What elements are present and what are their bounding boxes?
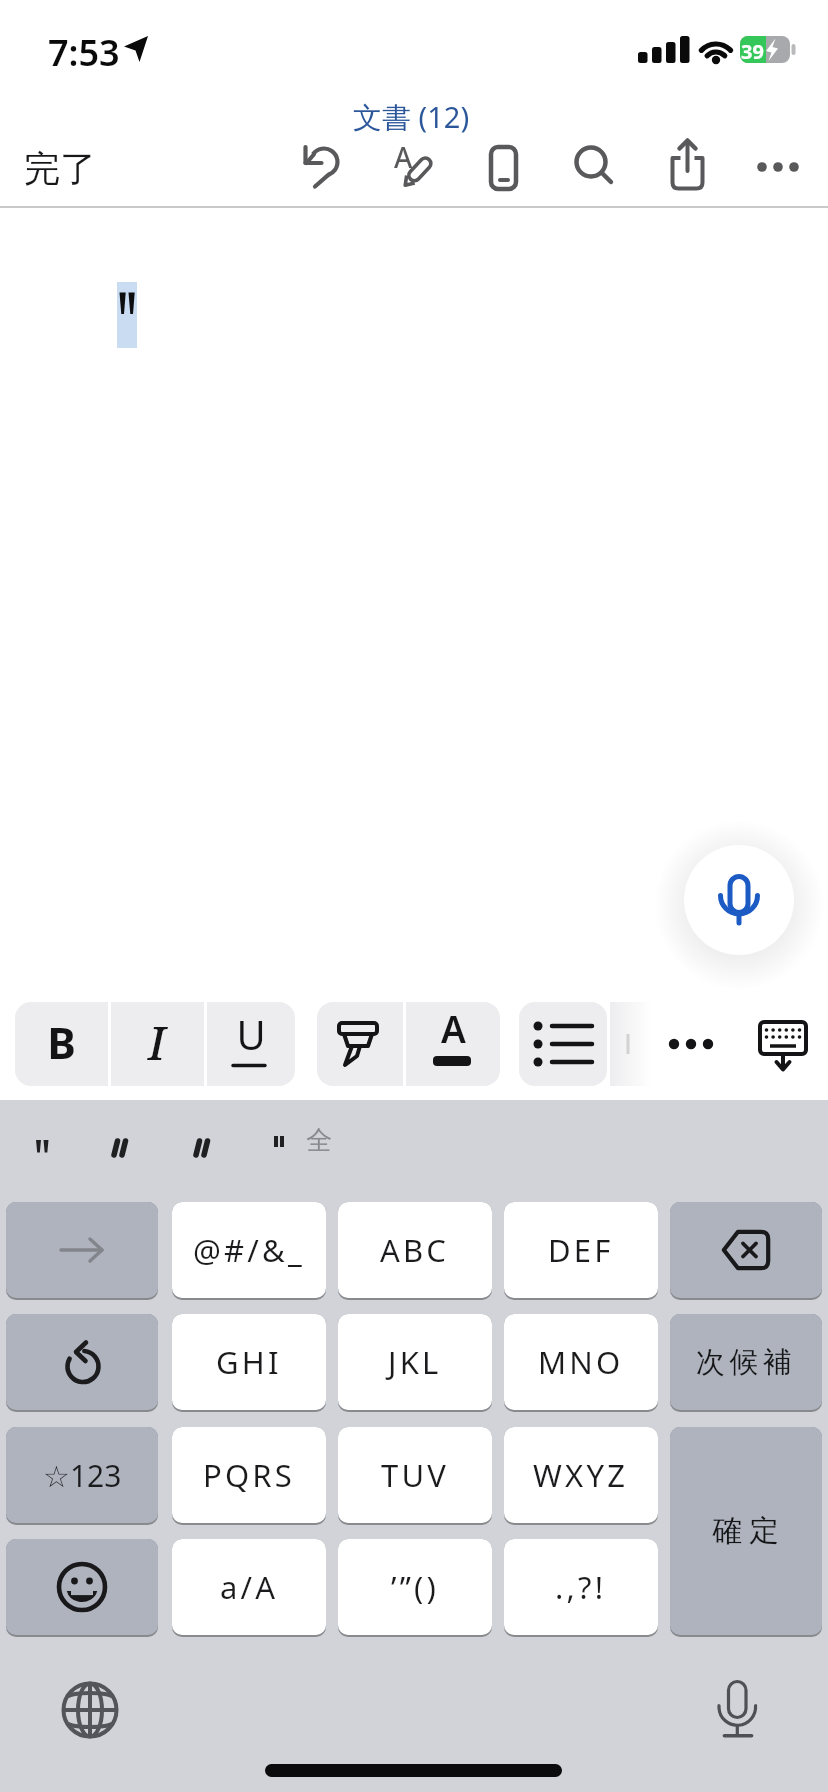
button[interactable] [6,1539,158,1637]
staticText: MNO [538,1341,624,1383]
button[interactable] [657,137,717,197]
staticText: A [394,138,413,176]
staticText: B [47,1013,76,1072]
button[interactable]: JKL [338,1314,492,1412]
staticText: 文書 (12) [353,97,470,137]
button[interactable] [708,1676,768,1736]
button[interactable] [750,1002,828,1086]
staticText: I [148,1011,166,1074]
staticText: PQRS [203,1454,296,1496]
staticText: U [236,1007,266,1061]
staticText: DEF [548,1229,614,1271]
button[interactable] [60,1676,120,1736]
button[interactable]: @#/&_ [172,1202,326,1300]
staticText: TUV [381,1454,450,1496]
button[interactable]: ☆123 [6,1427,158,1525]
staticText: a/A [220,1566,279,1608]
button[interactable] [684,845,794,955]
button[interactable]: 次候補 [670,1314,822,1412]
button[interactable]: GHI [172,1314,326,1412]
button[interactable] [748,137,808,197]
button[interactable] [565,137,625,197]
staticText: WXYZ [533,1454,629,1496]
button[interactable]: WXYZ [504,1427,658,1525]
button[interactable] [15,1002,103,1086]
button[interactable] [6,1314,158,1412]
button[interactable] [317,1002,405,1086]
staticText: ’”() [391,1566,439,1608]
button[interactable]: a/A [172,1539,326,1637]
staticText: ☆123 [43,1455,122,1496]
button[interactable]: DEF [504,1202,658,1300]
staticText: 39 [741,38,764,65]
staticText: 完了 [24,146,96,191]
button[interactable]: .,?! [504,1539,658,1637]
button[interactable] [110,1002,198,1086]
staticText: 確定 [709,1512,783,1550]
button[interactable]: PQRS [172,1427,326,1525]
staticText: .,?! [555,1566,607,1608]
staticText: JKL [388,1341,442,1383]
button[interactable] [206,1002,294,1086]
button[interactable] [406,1002,494,1086]
button[interactable] [473,137,533,197]
button[interactable]: ABC [338,1202,492,1300]
staticText: A [441,1003,466,1053]
button[interactable] [380,137,440,197]
button[interactable]: ’”() [338,1539,492,1637]
staticText: ABC [380,1229,450,1271]
button[interactable] [660,1002,748,1086]
staticText: GHI [216,1341,282,1383]
button[interactable]: MNO [504,1314,658,1412]
button[interactable] [6,1202,158,1300]
button[interactable]: TUV [338,1427,492,1525]
button[interactable] [519,1002,607,1086]
staticText: 次候補 [696,1344,797,1381]
staticText: 7:53 [48,28,120,77]
staticText: 全 [306,1124,332,1157]
button[interactable] [670,1202,822,1300]
button[interactable] [290,137,350,197]
button[interactable]: 確定 [670,1427,822,1637]
staticText: @#/&_ [193,1229,305,1271]
